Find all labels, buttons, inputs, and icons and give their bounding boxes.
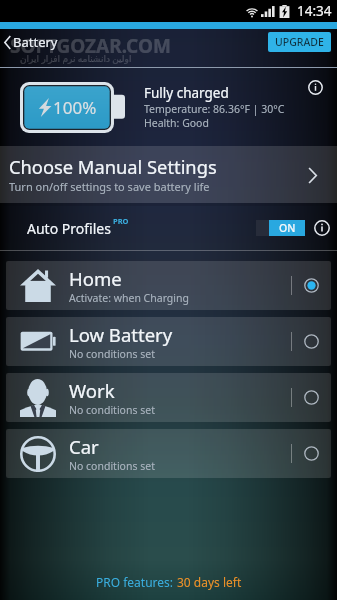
staticText: ON [279, 221, 296, 235]
staticText: Activate: when Charging [69, 291, 189, 305]
staticText: Work [69, 378, 115, 403]
staticText: Choose Manual Settings [9, 154, 217, 179]
button[interactable]: Auto profiles info [314, 220, 330, 236]
staticText: Turn on/off settings to save battery lif… [9, 179, 210, 194]
staticText: Car [69, 434, 99, 459]
staticText: No conditions set [69, 347, 155, 361]
staticText: Battery [13, 33, 58, 51]
staticText: No conditions set [69, 459, 155, 473]
button[interactable]: Battery info [308, 80, 323, 95]
staticText: No conditions set [69, 403, 155, 417]
staticText: SOFTGOZAR.COM [10, 33, 171, 59]
staticText: 100% [53, 96, 97, 119]
staticText: Fully charged [144, 84, 229, 102]
staticText: Health: Good [144, 116, 209, 130]
staticText: Auto Profiles [27, 219, 111, 238]
button[interactable]: Home [6, 261, 331, 310]
button[interactable]: Low Battery [6, 317, 331, 366]
button[interactable]: Battery [0, 29, 62, 55]
staticText: اولین دانشنامه نرم افزار ایران [20, 52, 132, 64]
staticText: 30 days left [177, 574, 242, 590]
staticText: Temperature: 86.36°F | 30°C [144, 102, 285, 116]
staticText: PRO [113, 216, 129, 226]
button[interactable]: Choose Manual Settings [0, 146, 337, 203]
button[interactable]: Car [6, 429, 331, 478]
button[interactable]: UPGRADE [268, 32, 331, 52]
staticText: Home [69, 266, 122, 291]
staticText: UPGRADE [275, 35, 324, 49]
staticText: Low Battery [69, 322, 173, 347]
button[interactable]: Work [6, 373, 331, 422]
staticText: PRO features: [96, 574, 177, 590]
button[interactable]: ON [256, 220, 305, 236]
staticText: 14:34 [297, 2, 332, 20]
